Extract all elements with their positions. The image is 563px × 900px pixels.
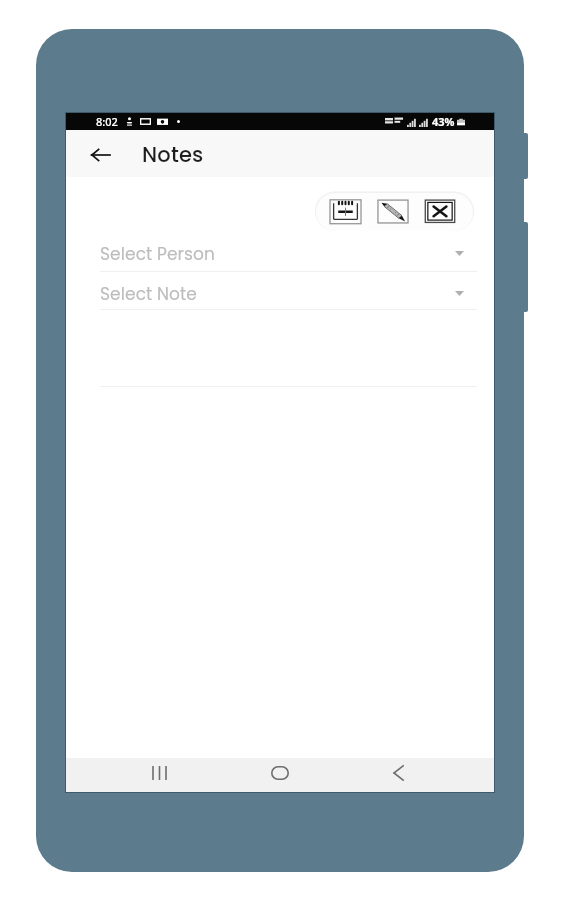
button[interactable]: Delete note: [423, 197, 457, 224]
staticText: 8:02: [96, 114, 118, 129]
staticText: Notes: [142, 140, 204, 169]
button[interactable]: Recent apps: [137, 756, 181, 790]
button[interactable]: Select Person: [100, 238, 477, 272]
button[interactable]: Back: [376, 756, 420, 790]
staticText: 43%: [432, 114, 455, 129]
button[interactable]: Navigate up: [76, 131, 124, 178]
staticText: Select Person: [100, 242, 215, 266]
button[interactable]: Add note: [328, 197, 362, 224]
button[interactable]: Home: [258, 756, 302, 790]
staticText: Select Note: [100, 282, 197, 306]
button[interactable]: Edit note: [376, 197, 410, 224]
button[interactable]: Select Note: [100, 278, 477, 310]
